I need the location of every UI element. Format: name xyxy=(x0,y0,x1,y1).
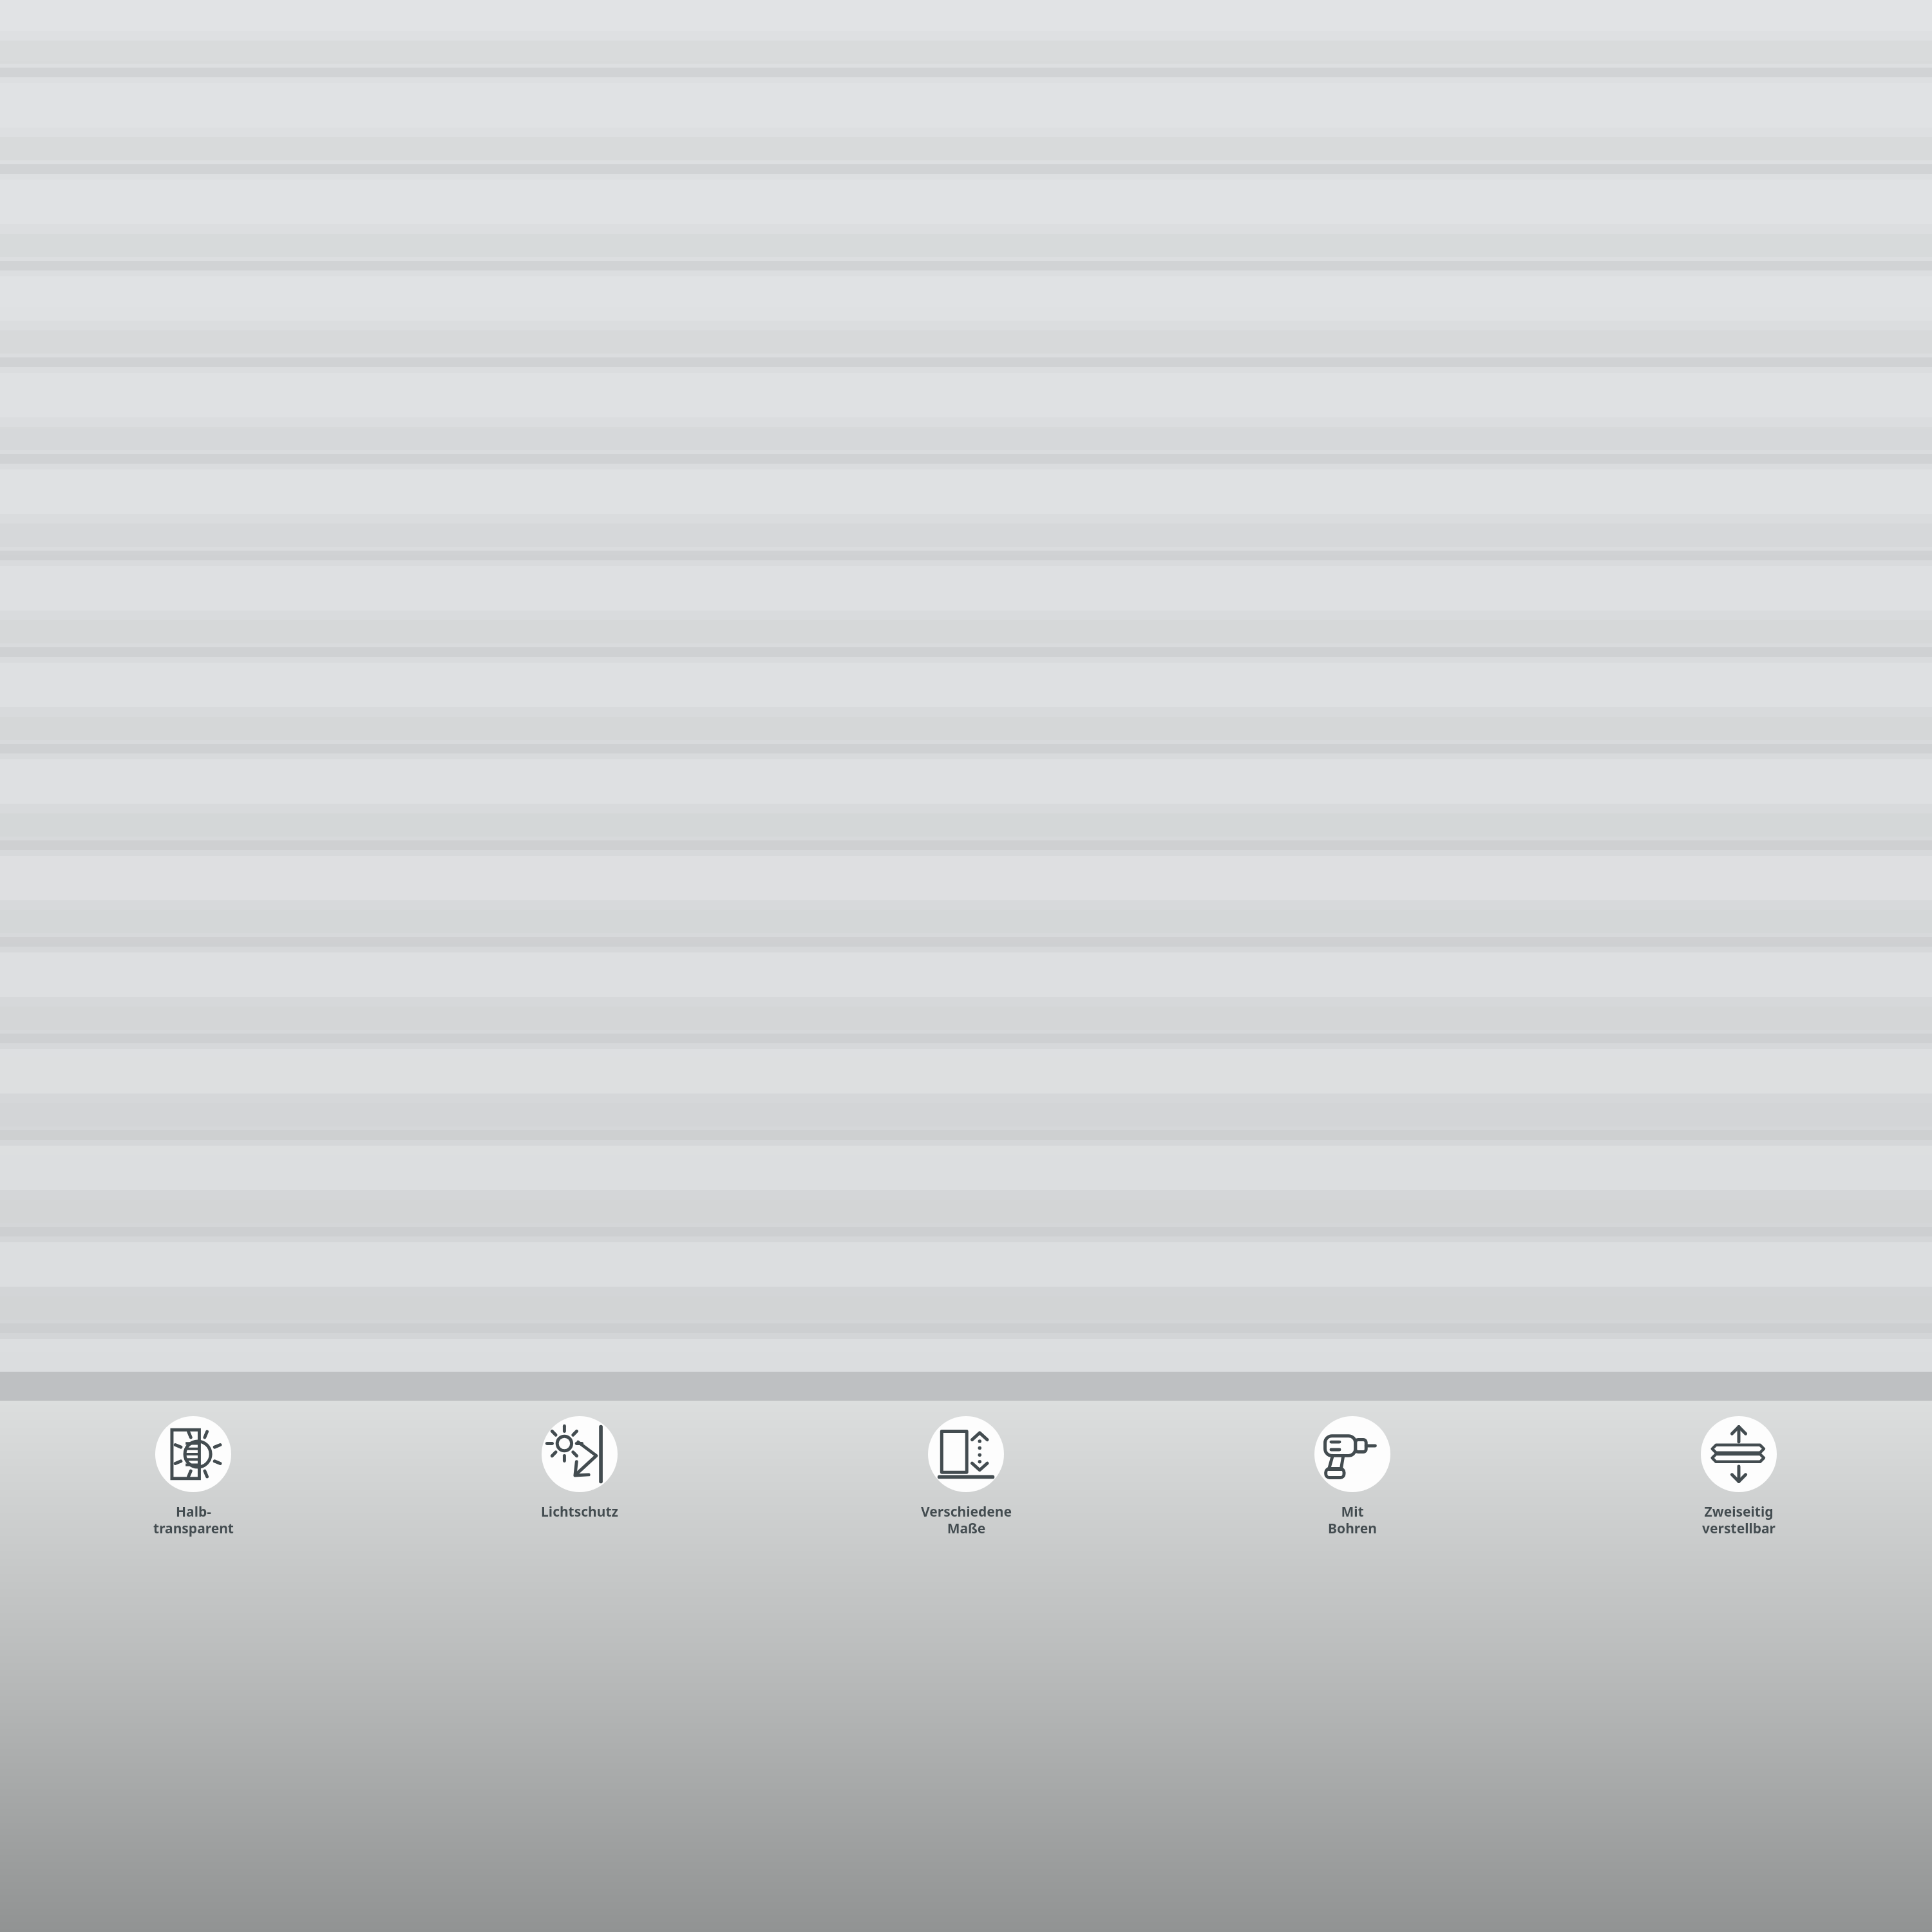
staticText: Verschiedene Maße xyxy=(921,1502,1012,1537)
staticText: Mit Bohren xyxy=(1328,1502,1377,1537)
staticText: Lichtschutz xyxy=(541,1502,618,1521)
button[interactable]: Light protection xyxy=(386,1416,773,1521)
button[interactable]: Various sizes xyxy=(773,1416,1159,1537)
button[interactable]: Semi transparent xyxy=(0,1416,386,1537)
button[interactable]: With drilling xyxy=(1159,1416,1546,1537)
staticText: Halb- transparent xyxy=(153,1502,234,1537)
staticText: Zweiseitig verstellbar xyxy=(1702,1502,1776,1537)
button[interactable]: Adjustable both sides xyxy=(1546,1416,1932,1537)
